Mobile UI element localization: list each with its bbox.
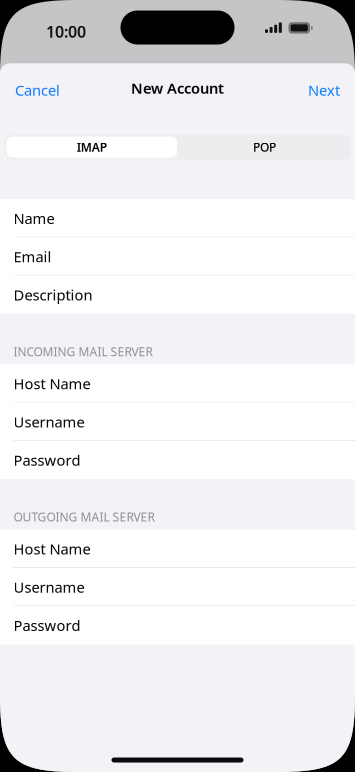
button[interactable]: Description (0, 276, 355, 314)
button[interactable]: Host Name (0, 364, 355, 403)
staticText: Password (13, 450, 80, 470)
button[interactable]: Host Name (0, 530, 355, 568)
staticText: Next (308, 80, 340, 100)
button[interactable]: IMAP (4, 135, 178, 160)
staticText: Password (13, 616, 80, 635)
staticText: Name (13, 209, 54, 228)
button[interactable]: Next (296, 71, 355, 105)
staticText: Username (13, 412, 84, 432)
staticText: INCOMING MAIL SERVER (13, 344, 152, 359)
staticText: Cancel (15, 80, 60, 100)
staticText: Username (13, 577, 84, 597)
button[interactable]: POP (178, 135, 351, 160)
staticText: OUTGOING MAIL SERVER (13, 509, 154, 525)
staticText: 10:00 (46, 21, 86, 42)
staticText: Description (13, 285, 92, 304)
staticText: New Account (131, 78, 224, 98)
button[interactable]: Cancel (0, 71, 72, 105)
staticText: IMAP (77, 139, 107, 155)
staticText: Host Name (13, 374, 90, 393)
staticText: POP (253, 139, 276, 155)
button[interactable]: Email (0, 237, 355, 276)
button[interactable]: Username (0, 568, 355, 606)
staticText: Email (13, 247, 51, 266)
staticText: Host Name (13, 539, 90, 559)
button[interactable]: Password (0, 441, 355, 479)
button[interactable]: Username (0, 403, 355, 441)
button[interactable]: Password (0, 606, 355, 644)
button[interactable]: Name (0, 199, 355, 237)
